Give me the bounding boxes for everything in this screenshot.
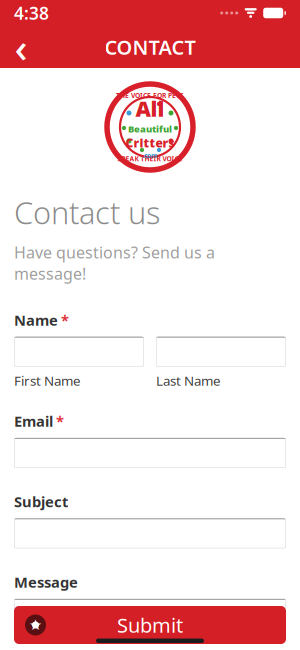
staticText: * [56, 411, 64, 431]
button[interactable]: Submit [14, 606, 286, 644]
staticText: Subject [14, 492, 68, 511]
staticText: Have questions? Send us a message! [14, 242, 215, 284]
staticText: CONTACT [104, 34, 195, 60]
staticText: .com [142, 151, 158, 160]
staticText: Submit [117, 612, 183, 638]
staticText: Beautiful [128, 123, 172, 135]
staticText: First Name [14, 372, 81, 389]
staticText: * [61, 310, 69, 330]
staticText: ‹ [14, 20, 27, 73]
staticText: Last Name [156, 372, 221, 389]
staticText: Message [14, 572, 78, 592]
staticText: Email [14, 411, 53, 431]
staticText: SPEAK THEIR VOICE [117, 154, 182, 163]
staticText: Critters [125, 135, 174, 151]
staticText: THE VOICE FOR PETS [116, 91, 184, 100]
staticText: Name [14, 310, 58, 330]
staticText: Contact us [14, 192, 160, 233]
button[interactable]: Back [5, 28, 37, 66]
staticText: All [135, 94, 164, 122]
staticText: ★ [29, 617, 42, 633]
staticText: 4:38 [14, 1, 49, 24]
